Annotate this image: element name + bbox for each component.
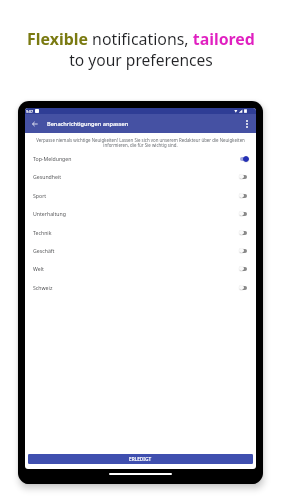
button[interactable]: Back <box>29 118 40 129</box>
staticText: ERLEDIGT <box>129 456 152 462</box>
button[interactable]: Gesundheit <box>25 167 256 185</box>
button[interactable]: Welt <box>25 259 256 277</box>
staticText: Geschäft <box>33 247 55 254</box>
staticText: Top-Meldungen <box>33 155 72 162</box>
button[interactable]: Schweiz <box>25 278 256 296</box>
staticText: Technik <box>33 229 52 236</box>
button[interactable]: Top-Meldungen <box>25 149 256 167</box>
button[interactable]: Geschäft <box>25 241 256 259</box>
staticText: Verpasse niemals wichtige Neuigkeiten! L… <box>30 137 251 149</box>
staticText: Schweiz <box>33 284 53 291</box>
button[interactable]: ERLEDIGT <box>28 454 253 464</box>
button[interactable]: Technik <box>25 223 256 241</box>
button[interactable]: Sport <box>25 186 256 204</box>
staticText: 9:07 <box>26 109 34 114</box>
staticText: Benachrichtigungen anpassen <box>47 120 129 128</box>
staticText: Flexible notifications, tailored <box>27 28 255 50</box>
staticText: Sport <box>33 192 47 199</box>
button[interactable]: Unterhaltung <box>25 204 256 222</box>
button[interactable]: More options <box>241 118 252 129</box>
staticText: Unterhaltung <box>33 210 66 217</box>
staticText: to your preferences <box>69 49 213 70</box>
staticText: Gesundheit <box>33 173 62 180</box>
staticText: Welt <box>33 265 44 272</box>
